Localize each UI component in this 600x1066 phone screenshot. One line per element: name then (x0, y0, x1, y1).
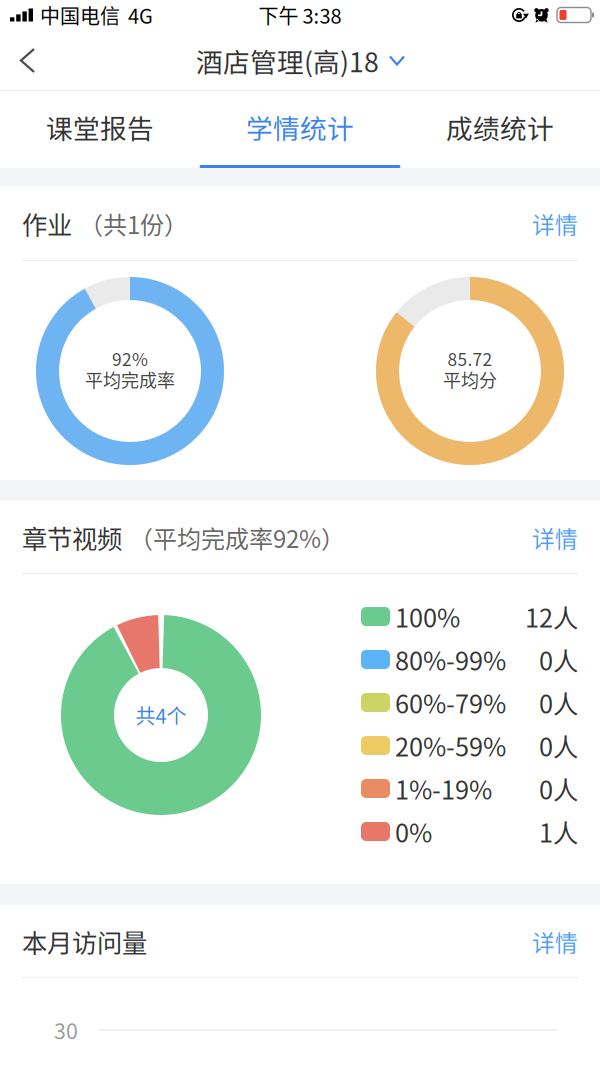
staticText: 下午 3:38 (258, 0, 341, 29)
staticText: 4G (128, 0, 153, 29)
staticText: 1人 (539, 813, 578, 850)
staticText: 92% (112, 346, 148, 371)
staticText: 20%-59% (395, 727, 506, 764)
staticText: 60%-79% (395, 684, 506, 721)
staticText: 成绩统计 (446, 108, 554, 146)
staticText: 详情 (532, 521, 578, 554)
staticText: （共1份） (79, 206, 188, 241)
button[interactable]: 成绩统计 (400, 91, 600, 168)
button[interactable]: 详情 (502, 195, 600, 252)
button[interactable]: 返回 (0, 31, 56, 90)
button[interactable]: 切换班级 (190, 29, 410, 92)
staticText: 0人 (539, 641, 578, 678)
staticText: 章节视频 (22, 519, 122, 556)
staticText: 平均完成率 (85, 366, 175, 393)
staticText: 0人 (539, 684, 578, 721)
staticText: 12人 (525, 598, 578, 635)
staticText: 详情 (532, 925, 578, 958)
button[interactable]: 详情 (502, 509, 600, 566)
staticText: 1%-19% (395, 770, 492, 807)
staticText: 本月访问量 (22, 923, 147, 960)
staticText: 30 (54, 1015, 78, 1045)
staticText: 0% (395, 813, 432, 850)
staticText: 中国电信 (40, 0, 120, 29)
staticText: 学情统计 (246, 108, 354, 146)
button[interactable]: 课堂报告 (0, 91, 200, 168)
staticText: 100% (395, 598, 460, 635)
staticText: 课堂报告 (46, 108, 154, 146)
button[interactable]: 详情 (502, 913, 600, 970)
staticText: 80%-99% (395, 641, 506, 678)
button[interactable]: 学情统计 (200, 91, 400, 168)
staticText: 共4个 (135, 700, 186, 729)
staticText: 0人 (539, 770, 578, 807)
staticText: 详情 (532, 207, 578, 240)
staticText: 平均分 (443, 366, 497, 393)
staticText: 作业 (22, 205, 72, 242)
staticText: 85.72 (447, 346, 492, 371)
staticText: 0人 (539, 727, 578, 764)
staticText: （平均完成率92%） (129, 520, 345, 555)
staticText: 酒店管理(高)18 (196, 41, 379, 80)
